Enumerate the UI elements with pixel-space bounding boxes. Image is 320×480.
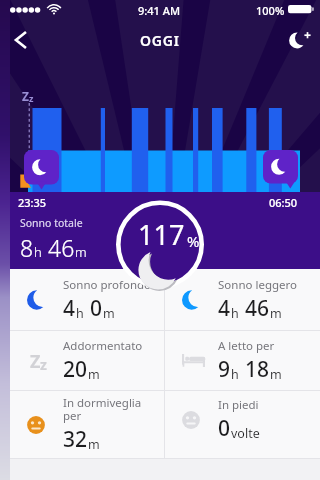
staticText: OGGI	[140, 31, 180, 50]
button[interactable]: Aggiungi sonno	[282, 22, 320, 58]
staticText: Sonno totale	[20, 216, 83, 230]
button[interactable]: Indietro	[10, 22, 48, 58]
staticText: In piedi	[218, 397, 259, 413]
staticText: h	[231, 366, 239, 383]
staticText: 0	[90, 294, 103, 323]
staticText: Sonno leggero	[218, 277, 297, 293]
staticText: z	[40, 355, 47, 374]
staticText: 8	[20, 232, 34, 263]
staticText: 9:41 AM	[138, 3, 181, 18]
button[interactable]: A letto per	[165, 331, 320, 390]
staticText: h	[76, 305, 84, 322]
staticText: 23:35	[18, 195, 47, 210]
staticText: m	[270, 366, 282, 383]
staticText: A letto per	[218, 338, 275, 354]
staticText: Z	[30, 349, 41, 373]
staticText: volte	[231, 425, 260, 442]
staticText: In dormiveglia per	[63, 395, 142, 424]
staticText: z	[29, 92, 34, 104]
staticText: Sonno profondo	[63, 277, 152, 293]
staticText: 46	[48, 232, 75, 263]
staticText: 100%	[256, 3, 285, 18]
staticText: h	[231, 305, 239, 322]
staticText: m	[270, 305, 282, 322]
staticText: 0	[218, 414, 231, 443]
staticText: 117	[138, 216, 185, 253]
staticText: 20	[63, 355, 88, 384]
staticText: 4	[218, 294, 231, 323]
button[interactable]: Sonno profondo	[10, 269, 164, 330]
staticText: 32	[63, 425, 88, 454]
button[interactable]: Sonno leggero	[165, 269, 320, 330]
staticText: 4	[63, 294, 76, 323]
staticText: m	[88, 436, 100, 453]
staticText: m	[75, 243, 87, 261]
button[interactable]: In piedi	[165, 391, 320, 458]
staticText: 9	[218, 355, 231, 384]
staticText: h	[34, 243, 42, 261]
staticText: m	[103, 305, 115, 322]
button[interactable]: In dormiveglia per	[10, 391, 164, 458]
staticText: Addormentato	[63, 338, 143, 354]
button[interactable]: Z	[10, 331, 164, 390]
staticText: m	[88, 366, 100, 383]
staticText: %	[187, 231, 200, 251]
staticText: 46	[245, 294, 270, 323]
staticText: Z	[22, 88, 29, 104]
staticText: 18	[245, 355, 270, 384]
staticText: 06:50	[269, 195, 298, 210]
